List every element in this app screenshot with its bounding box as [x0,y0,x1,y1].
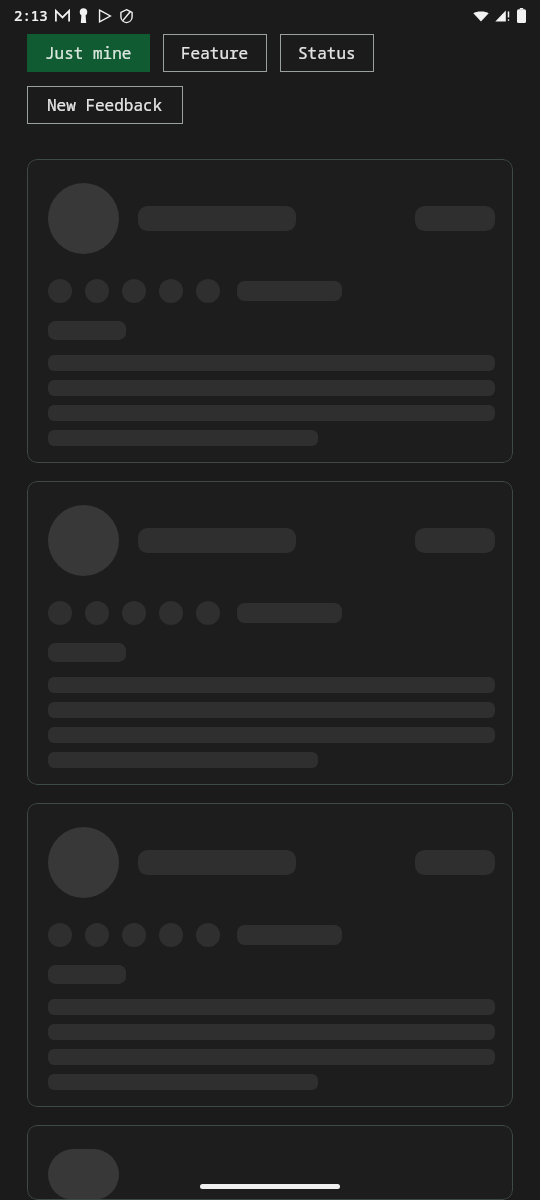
staticText: Just mine [45,42,132,64]
button[interactable]: Feature [163,34,267,72]
button[interactable]: Status [280,34,374,72]
staticText: New Feedback [47,94,163,116]
button[interactable]: Just mine [27,34,150,72]
button[interactable] [27,1125,513,1200]
staticText: Status [298,42,356,64]
button[interactable] [27,481,513,785]
staticText: 2:13 [14,6,48,25]
button[interactable] [27,803,513,1107]
button[interactable]: New Feedback [27,86,183,124]
button[interactable] [27,159,513,463]
staticText: Feature [181,42,249,64]
